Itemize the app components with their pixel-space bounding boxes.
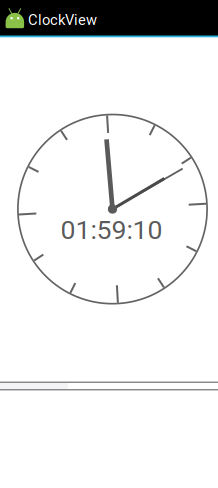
staticText: 01:59:10 [60, 214, 162, 246]
staticText: ClockView [28, 11, 97, 29]
